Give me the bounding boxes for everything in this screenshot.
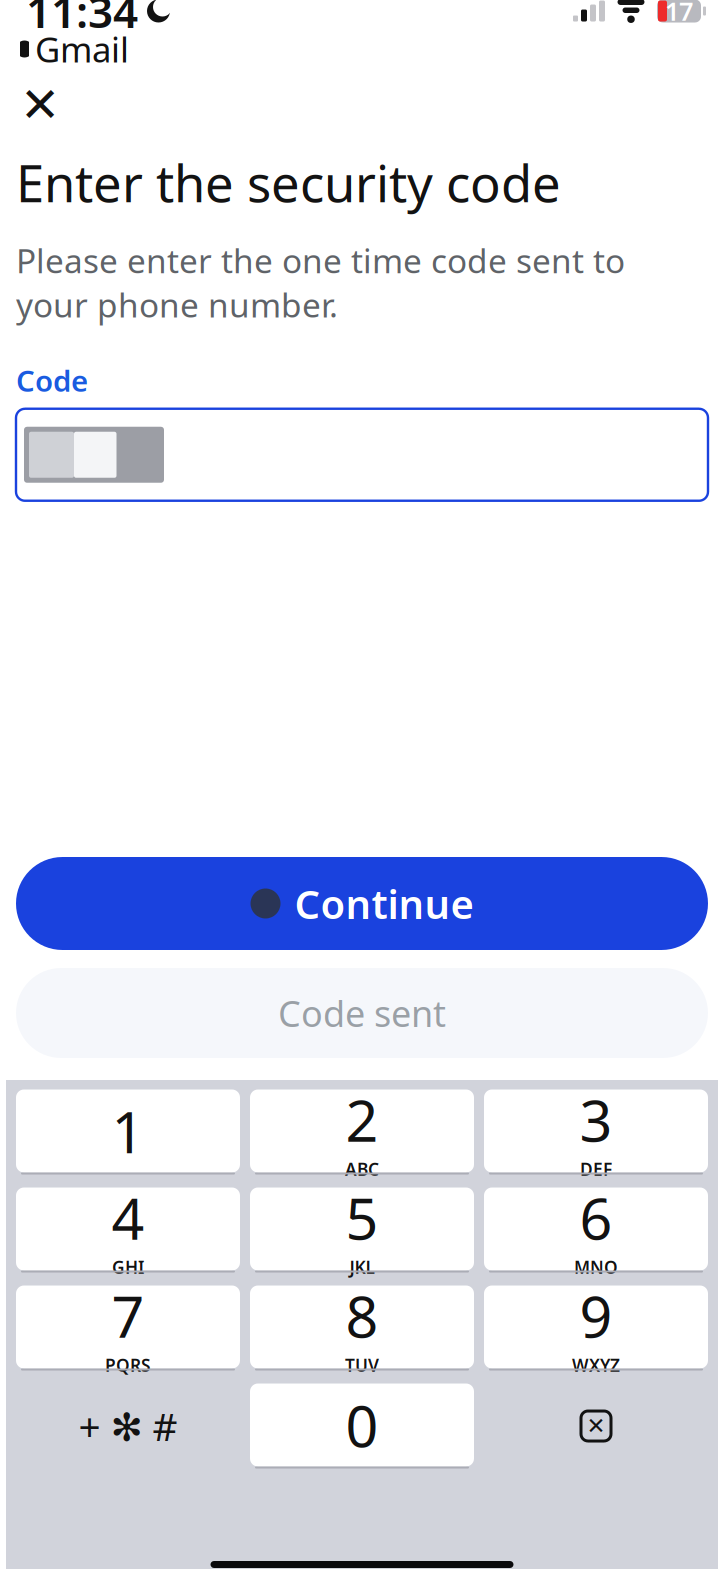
staticText: MNO [574,1256,618,1279]
staticText: + ✻ # [78,1400,177,1452]
staticText: 1 [111,1093,144,1169]
button[interactable]: 2 [250,1089,474,1175]
button[interactable]: 0 [250,1383,474,1469]
staticText: JKL [349,1256,374,1279]
button[interactable]: 9 [484,1285,708,1371]
staticText: 2 [345,1081,378,1157]
button[interactable]: 6 [484,1187,708,1273]
staticText: TUV [345,1354,379,1377]
staticText: 0 [345,1387,378,1463]
staticText: 5 [345,1179,378,1255]
staticText: Continue [294,877,473,930]
staticText: 6 [579,1179,612,1255]
staticText: 17 [665,0,693,28]
staticText: PQRS [105,1354,151,1377]
staticText: ✕ [20,78,60,132]
button[interactable]: Close [16,81,64,129]
button[interactable]: 3 [484,1089,708,1175]
button[interactable]: Plus asterisk pound [16,1383,240,1469]
staticText: GHI [112,1256,144,1279]
button[interactable]: Code sent [16,968,708,1058]
button[interactable]: 4 [16,1187,240,1273]
button[interactable]: Gmail [20,23,129,75]
staticText: 8 [345,1277,378,1353]
staticText: WXYZ [572,1354,620,1377]
button[interactable]: Delete [484,1383,708,1469]
staticText: Please enter the one time code sent to y… [16,238,625,327]
staticText: 7 [111,1277,144,1353]
staticText: Gmail [35,26,129,72]
button[interactable]: Continue [16,857,708,950]
staticText: Code sent [278,989,446,1037]
button[interactable]: 8 [250,1285,474,1371]
staticText: 11:34 [26,0,138,40]
button[interactable]: 7 [16,1285,240,1371]
staticText: 4 [111,1179,144,1255]
staticText: ABC [345,1158,379,1181]
staticText: 3 [579,1081,612,1157]
staticText: Enter the security code [16,149,561,216]
staticText: Code [16,361,88,400]
staticText: DEF [580,1158,612,1181]
staticText: ✕ [586,1413,605,1439]
button[interactable]: 5 [250,1187,474,1273]
button[interactable]: 1 [16,1089,240,1175]
staticText: 9 [579,1277,612,1353]
